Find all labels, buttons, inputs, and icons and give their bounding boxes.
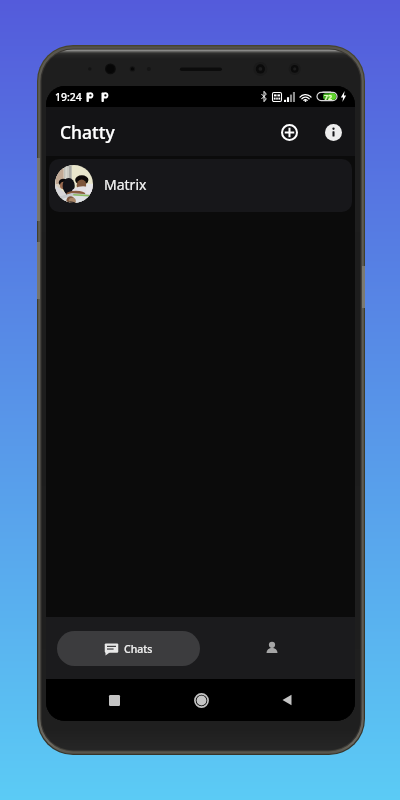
staticText: Chatty: [60, 120, 115, 144]
button[interactable]: Recents: [96, 682, 132, 718]
button[interactable]: Matrix: [49, 159, 352, 212]
button[interactable]: About: [317, 116, 349, 148]
staticText: Chats: [124, 642, 153, 656]
button[interactable]: Home: [183, 682, 219, 718]
button[interactable]: Contacts: [200, 617, 344, 679]
staticText: 72: [324, 92, 333, 102]
staticText: 19:24: [55, 90, 82, 104]
button[interactable]: Back: [269, 682, 305, 718]
button[interactable]: Add chat: [273, 116, 305, 148]
staticText: Matrix: [104, 175, 147, 194]
button[interactable]: Chats: [57, 631, 200, 666]
